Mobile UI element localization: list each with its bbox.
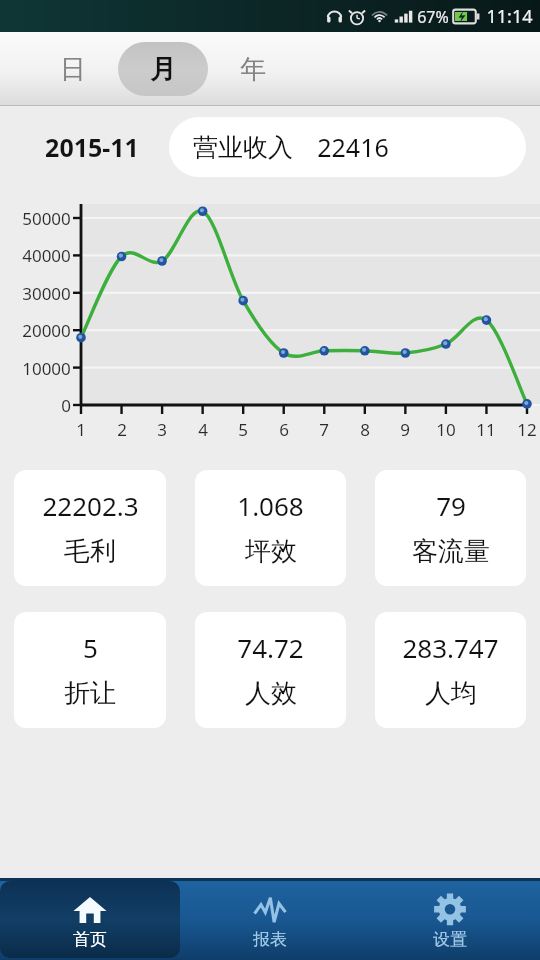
staticText: 8: [360, 418, 370, 441]
button[interactable]: 79: [375, 470, 526, 586]
staticText: 6: [279, 418, 289, 441]
staticText: 2015-11: [45, 130, 139, 164]
staticText: 0: [61, 394, 71, 417]
button[interactable]: 营业收入: [169, 117, 526, 177]
button[interactable]: 1.068: [195, 470, 346, 586]
button[interactable]: 74.72: [195, 612, 346, 728]
staticText: 月: [150, 53, 176, 86]
staticText: 5: [83, 630, 98, 665]
staticText: 50000: [22, 207, 71, 230]
button[interactable]: Reports: [180, 881, 360, 960]
staticText: 9: [400, 418, 410, 441]
staticText: 1.068: [237, 488, 304, 523]
button[interactable]: Settings: [360, 881, 540, 960]
staticText: 12: [517, 418, 537, 441]
staticText: 5: [238, 418, 248, 441]
staticText: 首页: [73, 929, 107, 950]
staticText: 283.747: [402, 630, 499, 665]
button[interactable]: 月: [118, 42, 208, 96]
staticText: 10000: [22, 357, 71, 380]
staticText: 客流量: [412, 535, 490, 568]
staticText: 毛利: [64, 535, 116, 568]
staticText: 年: [240, 53, 266, 86]
staticText: 79: [436, 488, 466, 523]
staticText: 30000: [22, 282, 71, 305]
button[interactable]: 年: [208, 42, 298, 96]
staticText: 1: [76, 418, 86, 441]
staticText: 11: [476, 418, 496, 441]
staticText: 日: [60, 53, 86, 86]
staticText: 4: [198, 418, 208, 441]
staticText: 67%: [417, 6, 449, 28]
staticText: 营业收入: [193, 132, 293, 163]
staticText: 20000: [22, 319, 71, 342]
staticText: 折让: [64, 677, 116, 710]
staticText: 22202.3: [42, 488, 139, 523]
button[interactable]: 日: [28, 42, 118, 96]
button[interactable]: 283.747: [375, 612, 526, 728]
staticText: 40000: [22, 244, 71, 267]
staticText: 22416: [317, 130, 389, 164]
staticText: 7: [319, 418, 329, 441]
staticText: 2: [117, 418, 127, 441]
staticText: 坪效: [245, 535, 297, 568]
staticText: 11:14: [486, 4, 533, 29]
button[interactable]: Home: [0, 881, 180, 960]
staticText: 人效: [245, 677, 297, 710]
staticText: 设置: [433, 929, 467, 950]
button[interactable]: 22202.3: [14, 470, 166, 586]
staticText: 74.72: [237, 630, 304, 665]
staticText: 3: [157, 418, 167, 441]
staticText: 报表: [253, 929, 287, 950]
staticText: 10: [436, 418, 456, 441]
button[interactable]: 5: [14, 612, 166, 728]
staticText: 人均: [425, 677, 477, 710]
